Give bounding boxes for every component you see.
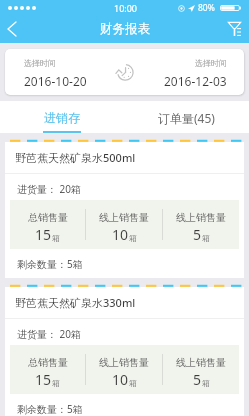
staticText: 进货量： 20箱 [17, 327, 82, 341]
staticText: 10 [112, 225, 129, 244]
staticText: 总销售量 [28, 356, 68, 369]
staticText: 15 [35, 225, 52, 244]
staticText: 选择时间 [24, 58, 56, 68]
staticText: 剩余数量：5箱 [17, 257, 83, 271]
staticText: 5 [193, 225, 202, 244]
staticText: 15 [35, 370, 52, 389]
staticText: 剩余数量：5箱 [17, 402, 83, 416]
staticText: 进货量： 20箱 [17, 182, 82, 196]
staticText: 选择时间 [195, 58, 227, 68]
staticText: 2016-12-03 [164, 73, 227, 89]
staticText: 线上销售量 [99, 356, 149, 369]
staticText: 箱 [129, 378, 137, 388]
staticText: 箱 [52, 378, 60, 388]
button[interactable]: Filter [219, 15, 249, 43]
staticText: 财务报表 [100, 21, 150, 37]
staticText: 野芭蕉天然矿泉水330ml [15, 295, 136, 310]
staticText: 2016-10-20 [24, 73, 87, 89]
staticText: 箱 [129, 233, 137, 243]
button[interactable]: 订单量(45) [124, 101, 249, 133]
staticText: 箱 [52, 233, 60, 243]
staticText: 箱 [202, 233, 210, 243]
button[interactable]: 进销存 [0, 101, 124, 133]
staticText: 线上销售量 [99, 211, 149, 224]
staticText: 10:00 [114, 2, 138, 14]
button[interactable]: 选择时间 [5, 49, 110, 95]
staticText: 箱 [202, 378, 210, 388]
staticText: 线上销售量 [176, 211, 226, 224]
staticText: 订单量(45) [158, 110, 215, 126]
staticText: 80% [198, 2, 215, 14]
staticText: 进销存 [44, 110, 80, 125]
staticText: 5 [193, 370, 202, 389]
staticText: 线上销售量 [176, 356, 226, 369]
staticText: 10 [112, 370, 129, 389]
staticText: 总销售量 [28, 211, 68, 224]
button[interactable]: Back [0, 15, 24, 43]
staticText: 野芭蕉天然矿泉水500ml [15, 150, 136, 165]
button[interactable]: 选择时间 [138, 49, 244, 95]
